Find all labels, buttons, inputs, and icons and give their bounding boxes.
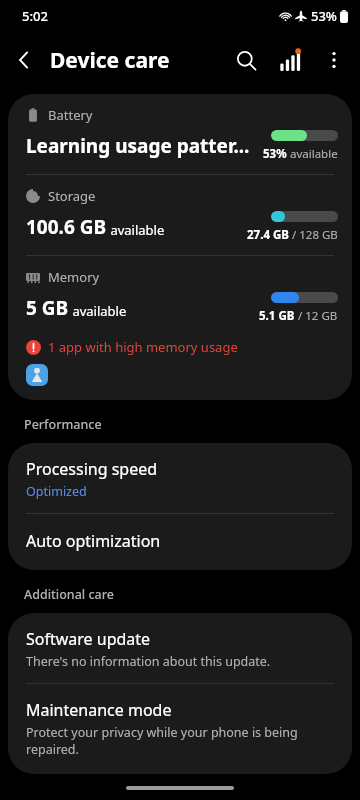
staticText: available xyxy=(287,146,338,162)
staticText: available xyxy=(69,302,127,320)
staticText: / 128 GB xyxy=(289,227,338,243)
button[interactable]: Battery xyxy=(8,94,352,174)
staticText: 53% xyxy=(311,7,337,25)
staticText: 5 GB xyxy=(26,295,69,321)
staticText: Processing speed xyxy=(26,458,158,480)
staticText: There's no information about this update… xyxy=(26,653,271,670)
staticText: Memory xyxy=(48,268,100,286)
staticText: Auto optimization xyxy=(26,530,161,552)
staticText: Device care xyxy=(50,46,170,75)
button[interactable]: Auto optimization xyxy=(8,514,352,570)
button[interactable]: 1 app with high memory usage xyxy=(8,336,352,358)
button[interactable]: Search xyxy=(224,38,268,82)
staticText: 100.6 GB xyxy=(26,214,107,240)
staticText: Optimized xyxy=(26,483,87,500)
button[interactable]: Processing speed xyxy=(8,443,352,513)
staticText: Learning usage patter... xyxy=(26,133,250,159)
staticText: 5.1 GB xyxy=(259,308,295,324)
staticText: Software update xyxy=(26,628,151,650)
staticText: Maintenance mode xyxy=(26,699,172,721)
staticText: Storage xyxy=(48,187,96,205)
button[interactable]: More options xyxy=(312,38,356,82)
button[interactable]: Maintenance mode xyxy=(8,684,352,774)
button[interactable]: Memory xyxy=(8,256,352,336)
staticText: Protect your privacy while your phone is… xyxy=(26,724,334,758)
staticText: 53% xyxy=(263,146,287,162)
staticText: 5:02 xyxy=(22,7,48,25)
staticText: 1 app with high memory usage xyxy=(48,338,238,356)
button[interactable]: Storage xyxy=(8,175,352,255)
button[interactable]: Usage statistics xyxy=(268,38,312,82)
button[interactable]: Back xyxy=(0,36,48,84)
staticText: Performance xyxy=(24,416,102,433)
staticText: 27.4 GB xyxy=(247,227,289,243)
staticText: Additional care xyxy=(24,586,114,603)
staticText: Battery xyxy=(48,106,93,124)
button[interactable]: Software update xyxy=(8,613,352,683)
staticText: / 12 GB xyxy=(295,308,338,324)
staticText: available xyxy=(107,221,165,239)
